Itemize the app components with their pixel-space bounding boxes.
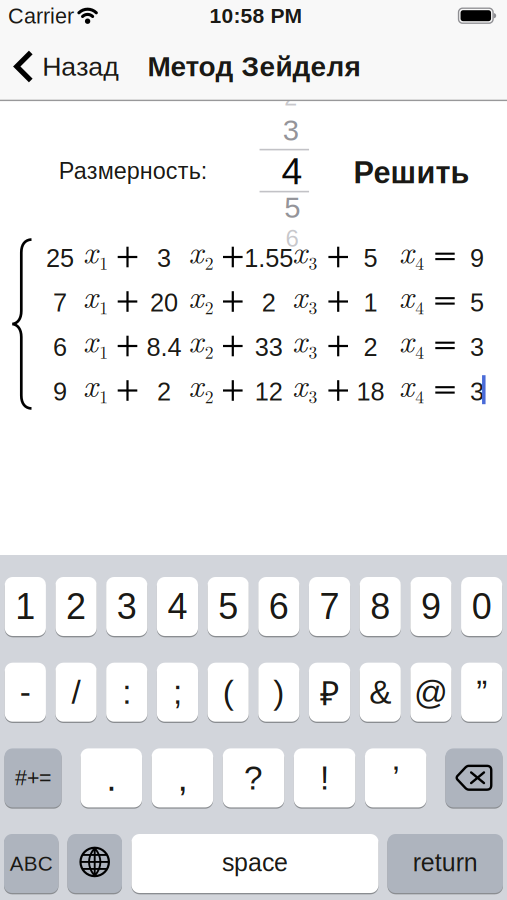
- button[interactable]: 7: [309, 577, 350, 636]
- button[interactable]: ABC: [4, 834, 58, 893]
- staticText: 9: [470, 244, 484, 272]
- button[interactable]: Назад: [14, 50, 119, 83]
- button[interactable]: ): [258, 663, 299, 722]
- staticText: 5: [284, 191, 300, 224]
- staticText: 4: [281, 150, 302, 192]
- button[interactable]: 3: [470, 378, 484, 406]
- button[interactable]: (: [208, 663, 249, 722]
- staticText: 8: [370, 586, 390, 627]
- button[interactable]: 2: [363, 333, 377, 361]
- staticText: 12: [255, 378, 283, 406]
- button[interactable]: [259, 100, 309, 241]
- button[interactable]: 6: [53, 333, 67, 361]
- button[interactable]: 3: [470, 333, 484, 361]
- button[interactable]: ”: [461, 663, 502, 722]
- staticText: 3: [283, 114, 299, 147]
- button[interactable]: #+=: [4, 748, 61, 807]
- button[interactable]: 3: [106, 577, 147, 636]
- button[interactable]: return: [387, 834, 503, 893]
- staticText: ABC: [10, 852, 53, 875]
- staticText: x: [292, 317, 307, 362]
- button[interactable]: 5: [363, 244, 377, 272]
- staticText: Решить: [353, 155, 469, 190]
- button[interactable]: 6: [258, 577, 299, 636]
- staticText: x: [292, 228, 307, 273]
- staticText: 8.4: [146, 333, 181, 361]
- staticText: 6: [269, 586, 289, 627]
- button[interactable]: 20: [150, 289, 178, 317]
- button[interactable]: 5: [208, 577, 249, 636]
- button[interactable]: 8: [360, 577, 401, 636]
- staticText: 6: [53, 333, 67, 361]
- staticText: 2: [205, 294, 214, 319]
- button[interactable]: &: [360, 663, 401, 722]
- staticText: 1: [99, 339, 108, 364]
- button[interactable]: :: [106, 663, 147, 722]
- button[interactable]: 7: [53, 289, 67, 317]
- staticText: 18: [356, 378, 384, 406]
- button[interactable]: 1.55: [244, 244, 293, 272]
- staticText: @: [414, 674, 448, 711]
- staticText: (: [223, 674, 234, 711]
- staticText: 20: [150, 289, 178, 317]
- staticText: x: [189, 228, 204, 273]
- staticText: x: [83, 361, 98, 406]
- button[interactable]: ,: [152, 748, 213, 807]
- staticText: Метод Зейделя: [147, 51, 360, 82]
- staticText: x: [399, 361, 414, 406]
- staticText: 33: [255, 333, 283, 361]
- staticText: 3: [308, 250, 317, 275]
- staticText: /: [72, 674, 81, 711]
- staticText: 3: [470, 378, 484, 406]
- button[interactable]: [67, 834, 122, 893]
- staticText: 3: [470, 333, 484, 361]
- staticText: x: [83, 228, 98, 273]
- button[interactable]: @: [410, 663, 452, 722]
- button[interactable]: 2: [157, 378, 171, 406]
- button[interactable]: ?: [223, 748, 284, 807]
- staticText: 3: [308, 339, 317, 364]
- staticText: 1.55: [244, 244, 293, 272]
- button[interactable]: 1: [5, 577, 46, 636]
- button[interactable]: 18: [356, 378, 384, 406]
- staticText: 10:58 PM: [209, 4, 302, 27]
- button[interactable]: 12: [255, 378, 283, 406]
- staticText: ?: [244, 759, 263, 796]
- button[interactable]: /: [55, 663, 97, 722]
- button[interactable]: 9: [53, 378, 67, 406]
- staticText: 5: [470, 289, 484, 317]
- button[interactable]: 0: [461, 577, 502, 636]
- staticText: 2: [157, 378, 171, 406]
- staticText: :: [122, 674, 131, 711]
- button[interactable]: ’: [365, 748, 426, 807]
- button[interactable]: 9: [410, 577, 452, 636]
- staticText: 3: [157, 244, 171, 272]
- staticText: x: [189, 361, 204, 406]
- button[interactable]: 25: [46, 244, 74, 272]
- staticText: 5: [363, 244, 377, 272]
- button[interactable]: [445, 748, 502, 807]
- staticText: 1: [99, 250, 108, 275]
- button[interactable]: !: [294, 748, 355, 807]
- button[interactable]: -: [5, 663, 46, 722]
- button[interactable]: 1: [363, 289, 377, 317]
- button[interactable]: 33: [255, 333, 283, 361]
- staticText: x: [292, 361, 307, 406]
- button[interactable]: 8.4: [146, 333, 181, 361]
- button[interactable]: 3: [157, 244, 171, 272]
- staticText: Размерность:: [59, 158, 207, 184]
- button[interactable]: .: [80, 748, 142, 807]
- button[interactable]: ₽: [309, 663, 350, 722]
- button[interactable]: 2: [262, 289, 276, 317]
- staticText: 2: [284, 84, 297, 111]
- button[interactable]: 9: [470, 244, 484, 272]
- staticText: x: [83, 272, 98, 317]
- staticText: #+=: [15, 766, 51, 790]
- staticText: ,: [177, 757, 187, 799]
- button[interactable]: space: [131, 834, 378, 893]
- button[interactable]: 5: [470, 289, 484, 317]
- button[interactable]: Решить: [353, 155, 469, 190]
- button[interactable]: ;: [157, 663, 198, 722]
- button[interactable]: 4: [157, 577, 198, 636]
- button[interactable]: 2: [55, 577, 97, 636]
